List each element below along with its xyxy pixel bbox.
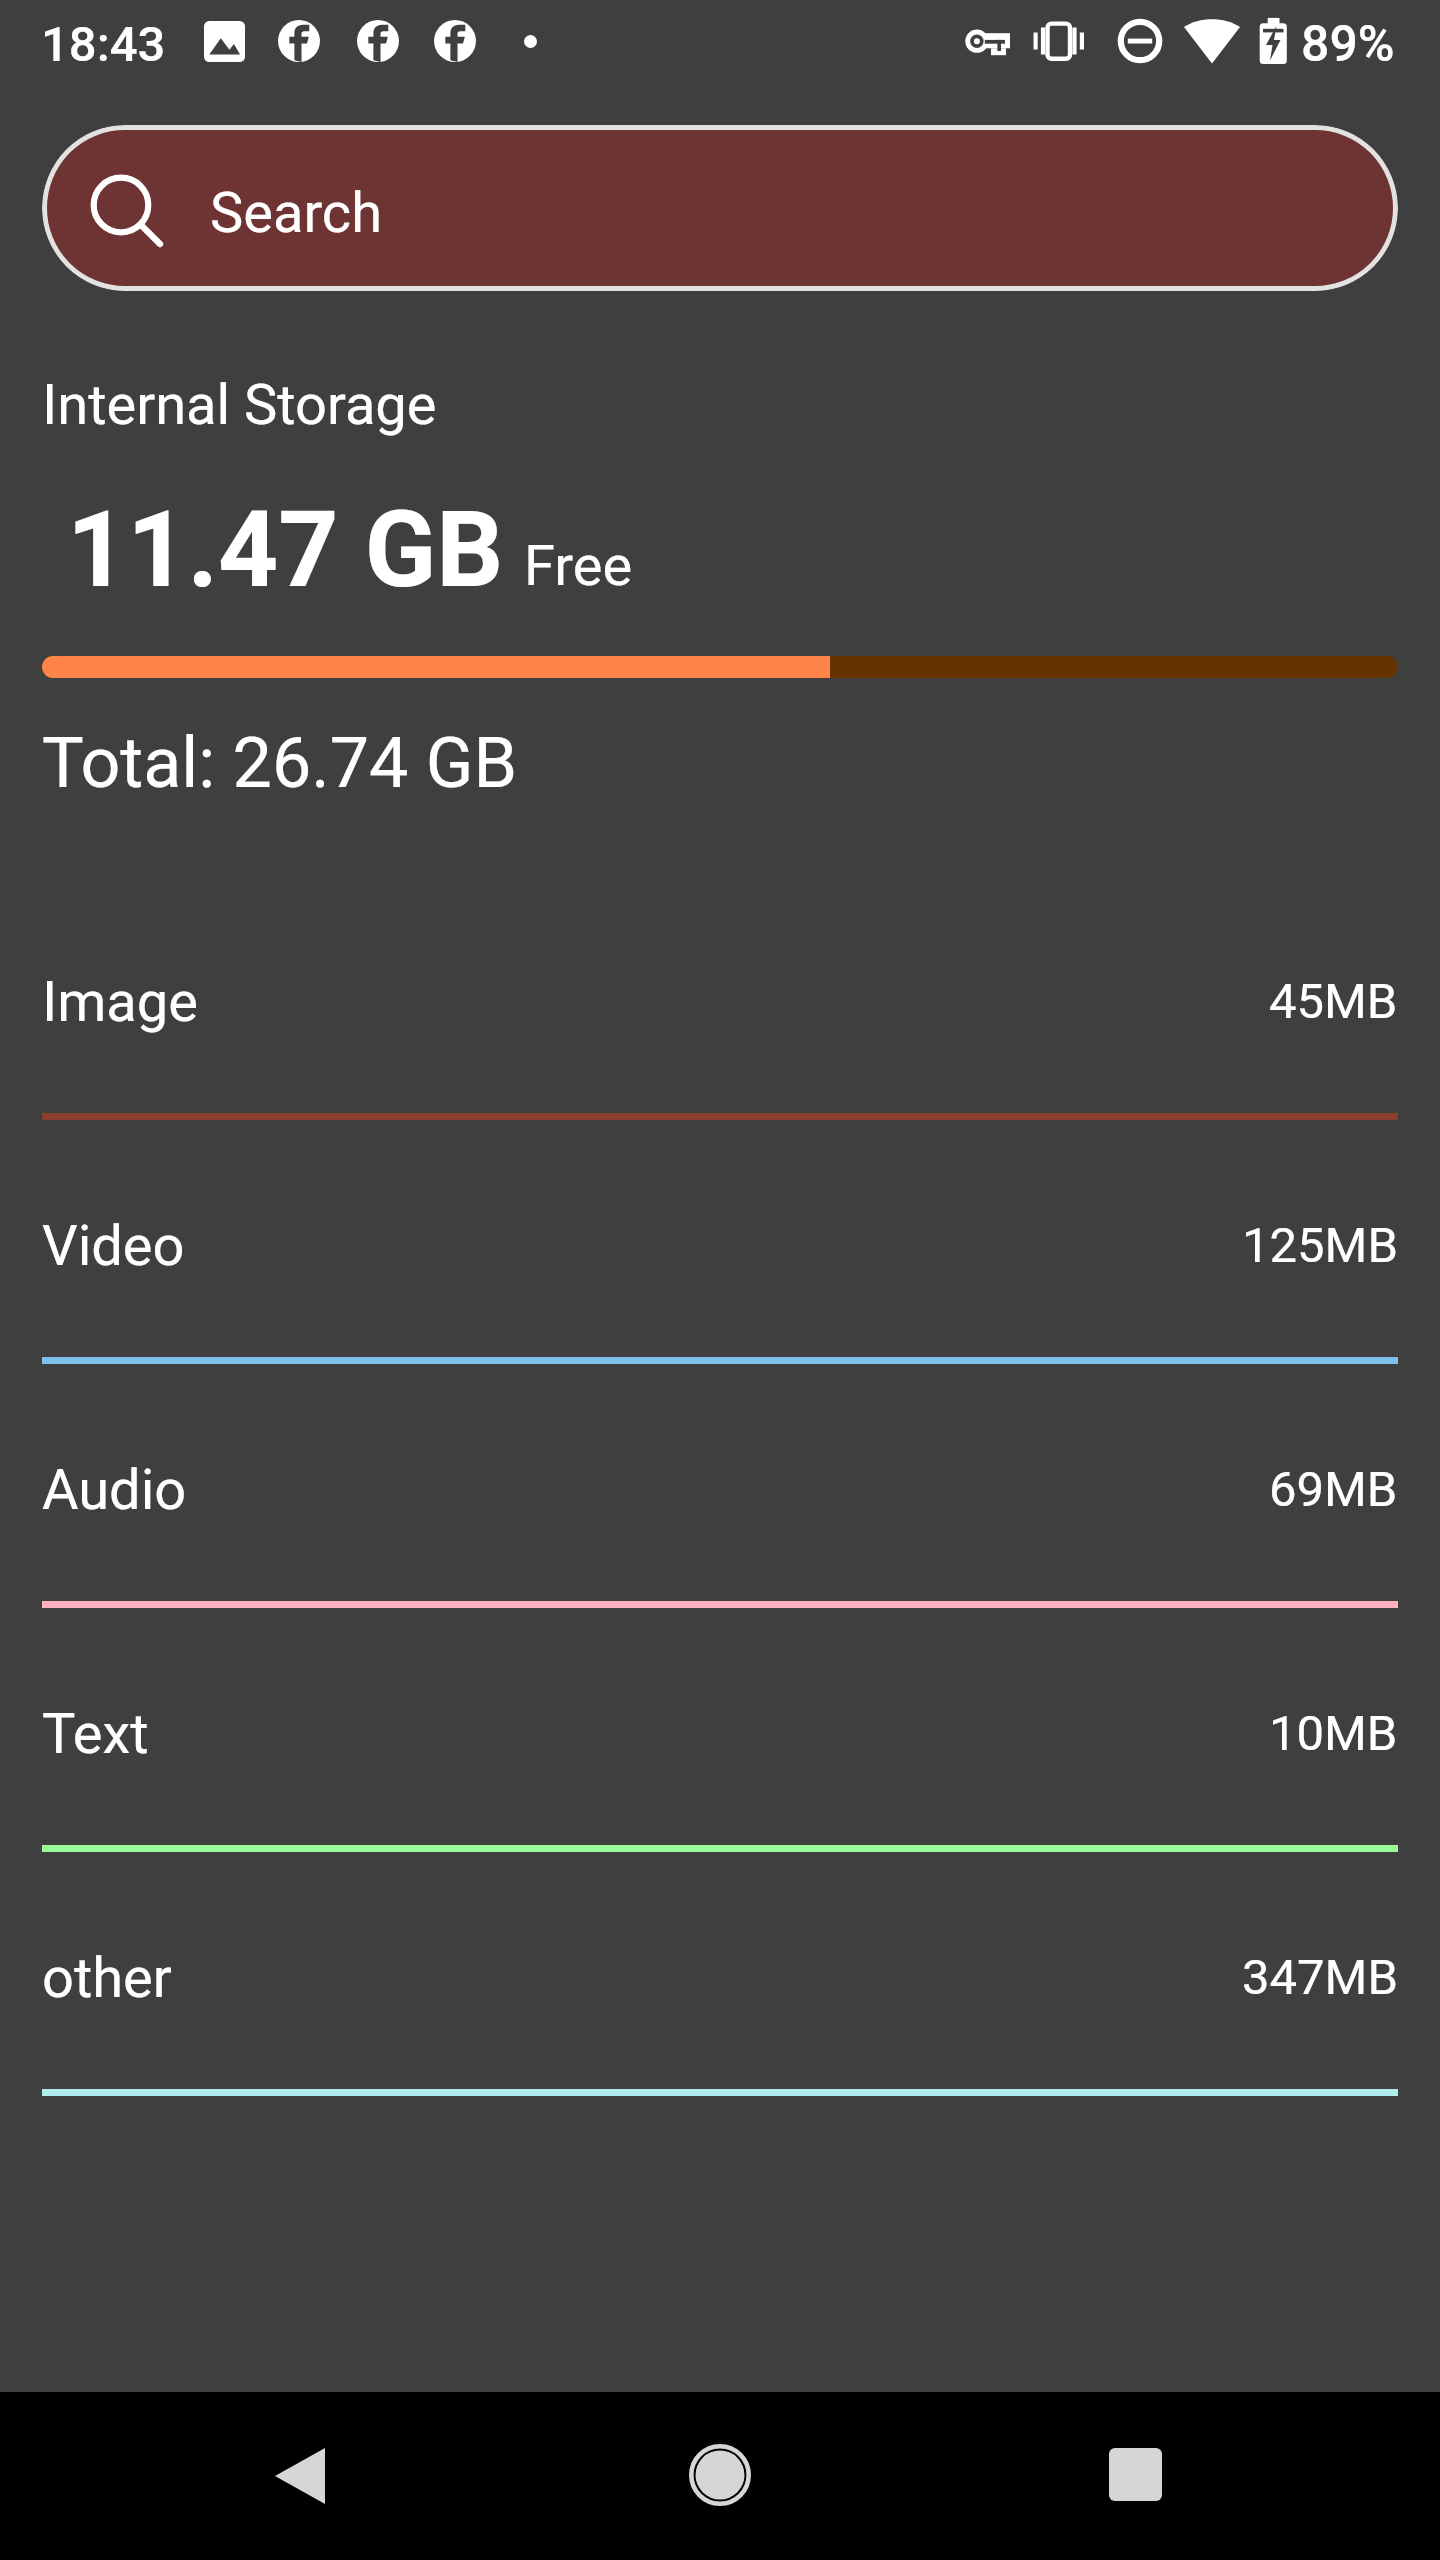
staticText: 347MB	[1242, 1949, 1398, 2006]
staticText: 10MB	[1269, 1705, 1398, 1762]
button[interactable]: Recents	[1045, 2406, 1225, 2546]
staticText: 69MB	[1269, 1461, 1398, 1518]
staticText: Text	[42, 1701, 149, 1767]
button[interactable]: Image	[0, 919, 1440, 1163]
button[interactable]: Search	[42, 125, 1398, 291]
button[interactable]: Home	[630, 2406, 810, 2546]
staticText: 45MB	[1269, 973, 1398, 1030]
button[interactable]: Video	[0, 1163, 1440, 1407]
staticText: 125MB	[1242, 1217, 1398, 1274]
button[interactable]: other	[0, 1895, 1440, 2139]
staticText: Search	[210, 180, 383, 246]
staticText: 18:43	[41, 16, 166, 73]
staticText: Total: 26.74 GB	[42, 722, 518, 804]
button[interactable]: Text	[0, 1651, 1440, 1895]
staticText: Internal Storage	[42, 372, 437, 438]
staticText: Image	[42, 969, 198, 1035]
staticText: 11.47 GB	[67, 489, 504, 612]
staticText: Free	[524, 533, 633, 599]
button[interactable]: Audio	[0, 1407, 1440, 1651]
button[interactable]: Back	[210, 2406, 390, 2546]
staticText: other	[42, 1945, 172, 2011]
staticText: Video	[42, 1213, 185, 1279]
staticText: 89%	[1301, 15, 1395, 74]
staticText: Audio	[42, 1457, 187, 1523]
